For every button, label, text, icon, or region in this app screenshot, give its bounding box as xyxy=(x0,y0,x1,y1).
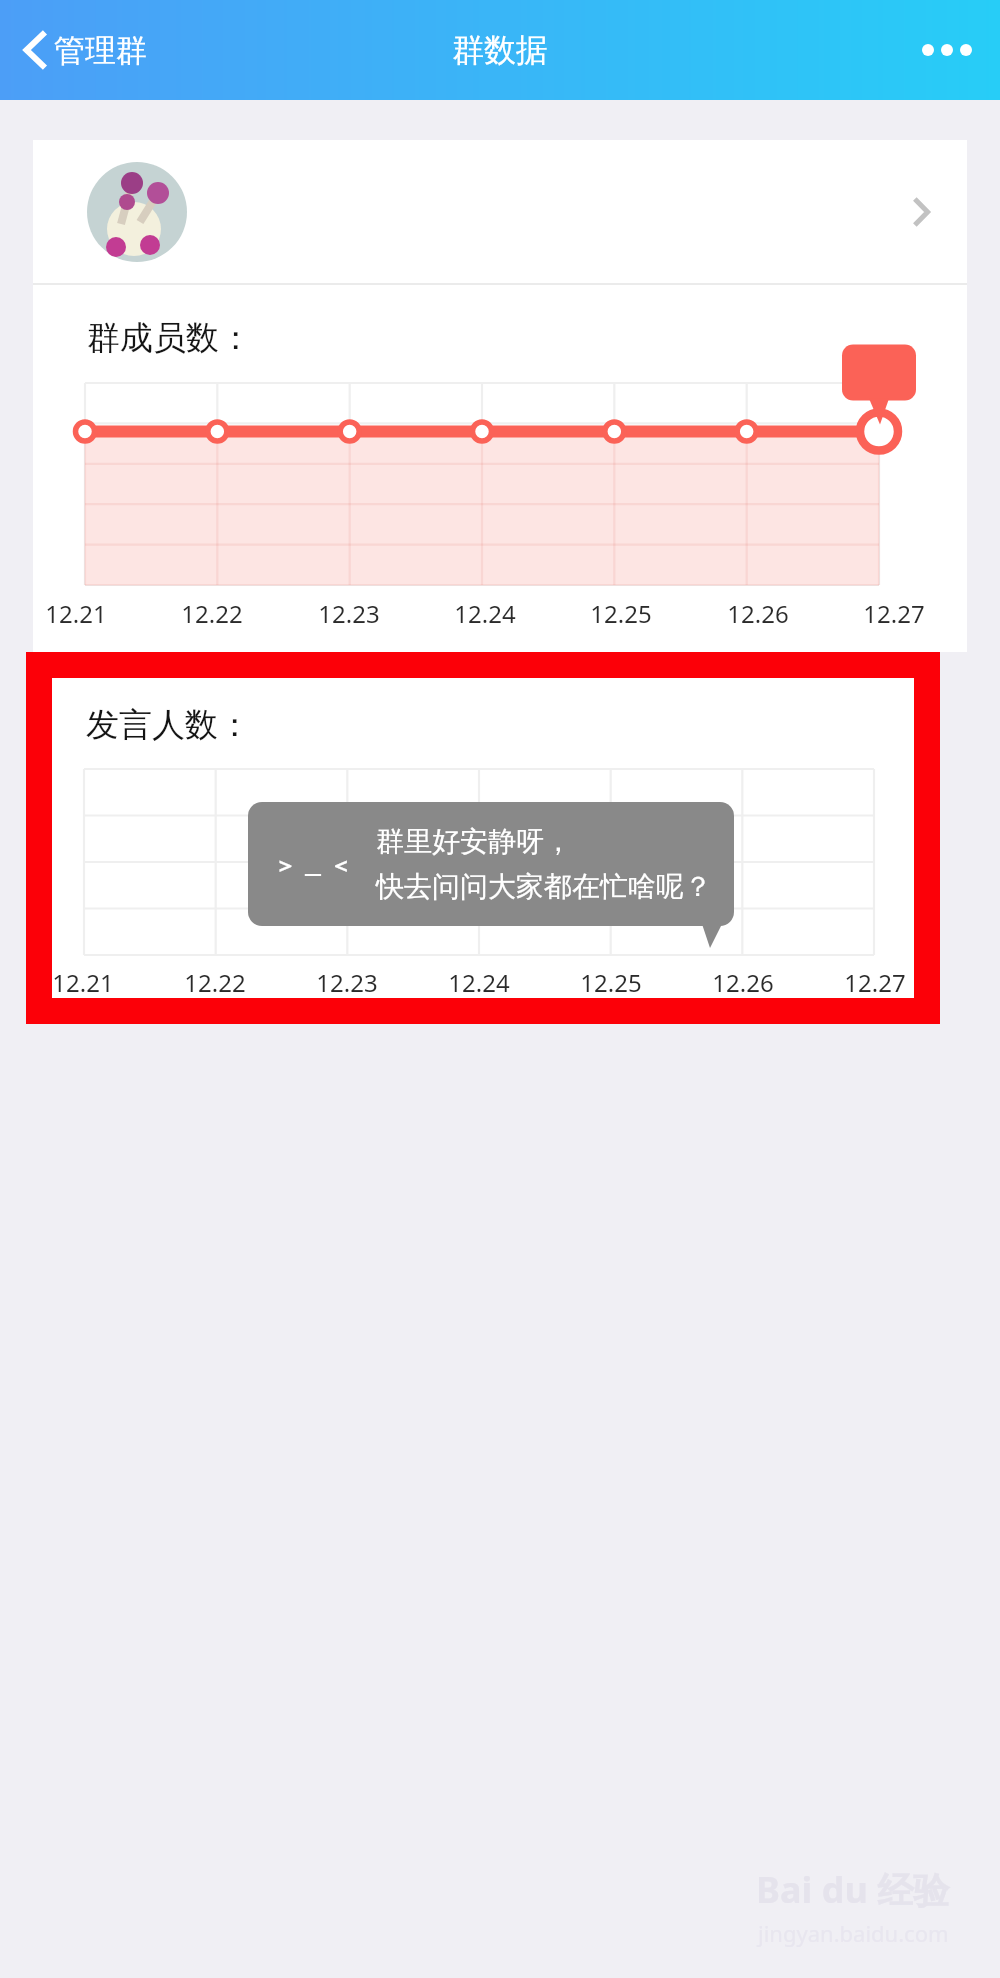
staticText: 12.25 xyxy=(580,966,642,998)
staticText: jingyan.baidu.com xyxy=(758,1918,949,1948)
staticText: 12.25 xyxy=(590,597,652,630)
staticText: 快去问问大家都在忙啥呢？ xyxy=(376,869,712,904)
button[interactable]: 发言人数： xyxy=(52,678,914,998)
staticText: 12.24 xyxy=(448,966,510,998)
staticText: 12.27 xyxy=(863,597,925,630)
staticText: 12.27 xyxy=(844,966,906,998)
button[interactable] xyxy=(33,140,967,283)
staticText: Bai du 经验 xyxy=(756,1865,950,1914)
button[interactable]: 管理群 xyxy=(14,20,155,80)
staticText: 12.24 xyxy=(454,597,516,630)
staticText: 12.21 xyxy=(52,966,114,998)
staticText: ＞ ＿ ＜ xyxy=(274,849,352,879)
button[interactable]: More options xyxy=(910,32,984,68)
staticText: 12.22 xyxy=(184,966,246,998)
staticText: 管理群 xyxy=(54,31,147,70)
staticText: 群里好安静呀， xyxy=(376,824,572,859)
staticText: 群数据 xyxy=(452,30,548,70)
staticText: 12.23 xyxy=(318,597,380,630)
staticText: 群成员数： xyxy=(87,317,252,359)
staticText: 12.22 xyxy=(181,597,243,630)
staticText: 发言人数： xyxy=(86,704,251,746)
staticText: 12.21 xyxy=(45,597,107,630)
staticText: 12.26 xyxy=(712,966,774,998)
staticText: 12.26 xyxy=(727,597,789,630)
staticText: 12.23 xyxy=(316,966,378,998)
